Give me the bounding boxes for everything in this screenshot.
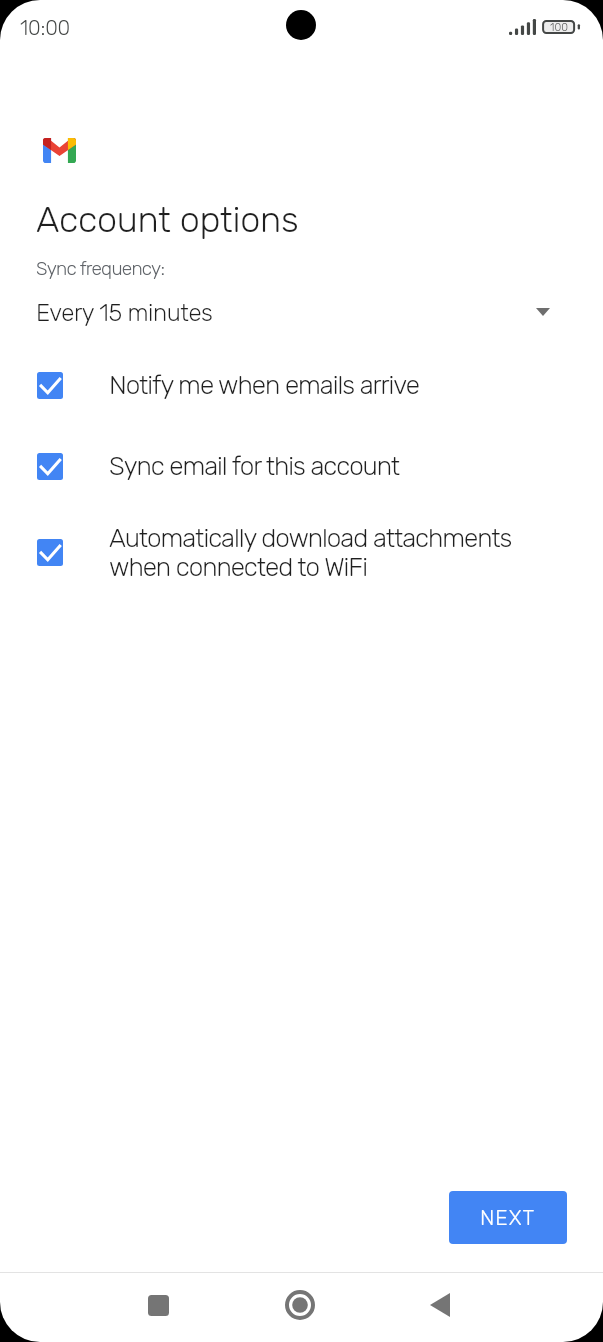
staticText: 100 [550, 21, 568, 34]
staticText: Notify me when emails arrive [109, 370, 419, 401]
button[interactable]: Recent apps [118, 1272, 198, 1342]
staticText: Sync email for this account [109, 451, 400, 482]
staticText: 10:00 [20, 16, 70, 40]
staticText: Sync frequency: [36, 257, 165, 280]
button[interactable]: Back [401, 1272, 481, 1342]
staticText: Automatically download attachments when … [109, 523, 512, 578]
staticText: Account options [36, 198, 299, 241]
button[interactable]: NEXT [449, 1191, 567, 1244]
button[interactable]: Notify me when emails arrive [0, 358, 603, 413]
button[interactable]: Every 15 minutes [0, 292, 603, 328]
button[interactable]: Automatically download attachments when … [0, 525, 603, 580]
staticText: Every 15 minutes [36, 299, 213, 327]
staticText: NEXT [480, 1205, 536, 1230]
button[interactable]: Sync email for this account [0, 439, 603, 494]
button[interactable]: Home [260, 1272, 340, 1342]
